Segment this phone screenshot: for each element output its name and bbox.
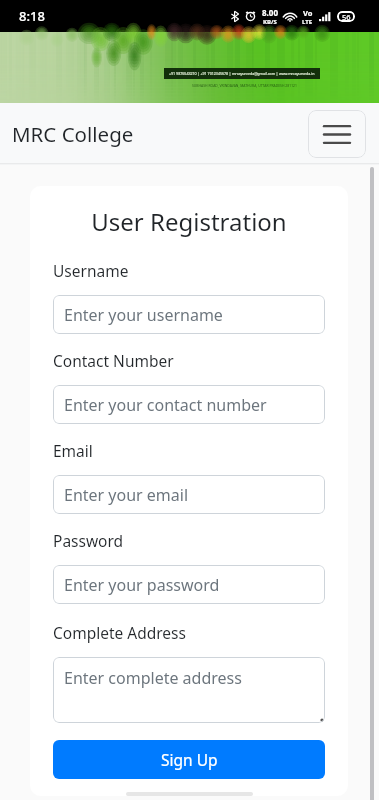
staticText: User Registration: [53, 205, 325, 238]
staticText: Vo: [303, 8, 313, 18]
staticText: Complete Address: [53, 622, 186, 643]
staticText: 56: [342, 12, 351, 22]
staticText: Enter complete address: [64, 667, 242, 689]
staticText: +91 9876543210 | +91 7012345678 | mrcayu…: [169, 71, 315, 76]
staticText: KB/S: [263, 18, 277, 26]
button[interactable]: Sign Up: [53, 740, 325, 779]
staticText: LTE: [302, 18, 313, 26]
staticText: Contact Number: [53, 350, 174, 371]
staticText: Enter your contact number: [64, 394, 267, 416]
button[interactable]: Enter complete address: [53, 657, 325, 723]
staticText: Username: [53, 260, 129, 281]
button[interactable]: Enter your contact number: [53, 385, 325, 424]
staticText: SUBHASH ROAD, VRINDAVAN, MATHURA, UTTAR …: [192, 83, 297, 88]
button[interactable]: Enter your password: [53, 565, 325, 604]
staticText: Email: [53, 440, 93, 461]
staticText: Enter your password: [64, 574, 220, 596]
staticText: Enter your username: [64, 304, 223, 326]
staticText: Sign Up: [161, 749, 218, 770]
staticText: 8.00: [262, 7, 278, 18]
staticText: 8:18: [19, 7, 45, 25]
staticText: Enter your email: [64, 484, 189, 506]
button[interactable]: Menu: [308, 110, 366, 158]
button[interactable]: Enter your email: [53, 475, 325, 514]
button[interactable]: Enter your username: [53, 295, 325, 334]
staticText: Password: [53, 530, 124, 551]
staticText: MRC College: [12, 120, 134, 148]
